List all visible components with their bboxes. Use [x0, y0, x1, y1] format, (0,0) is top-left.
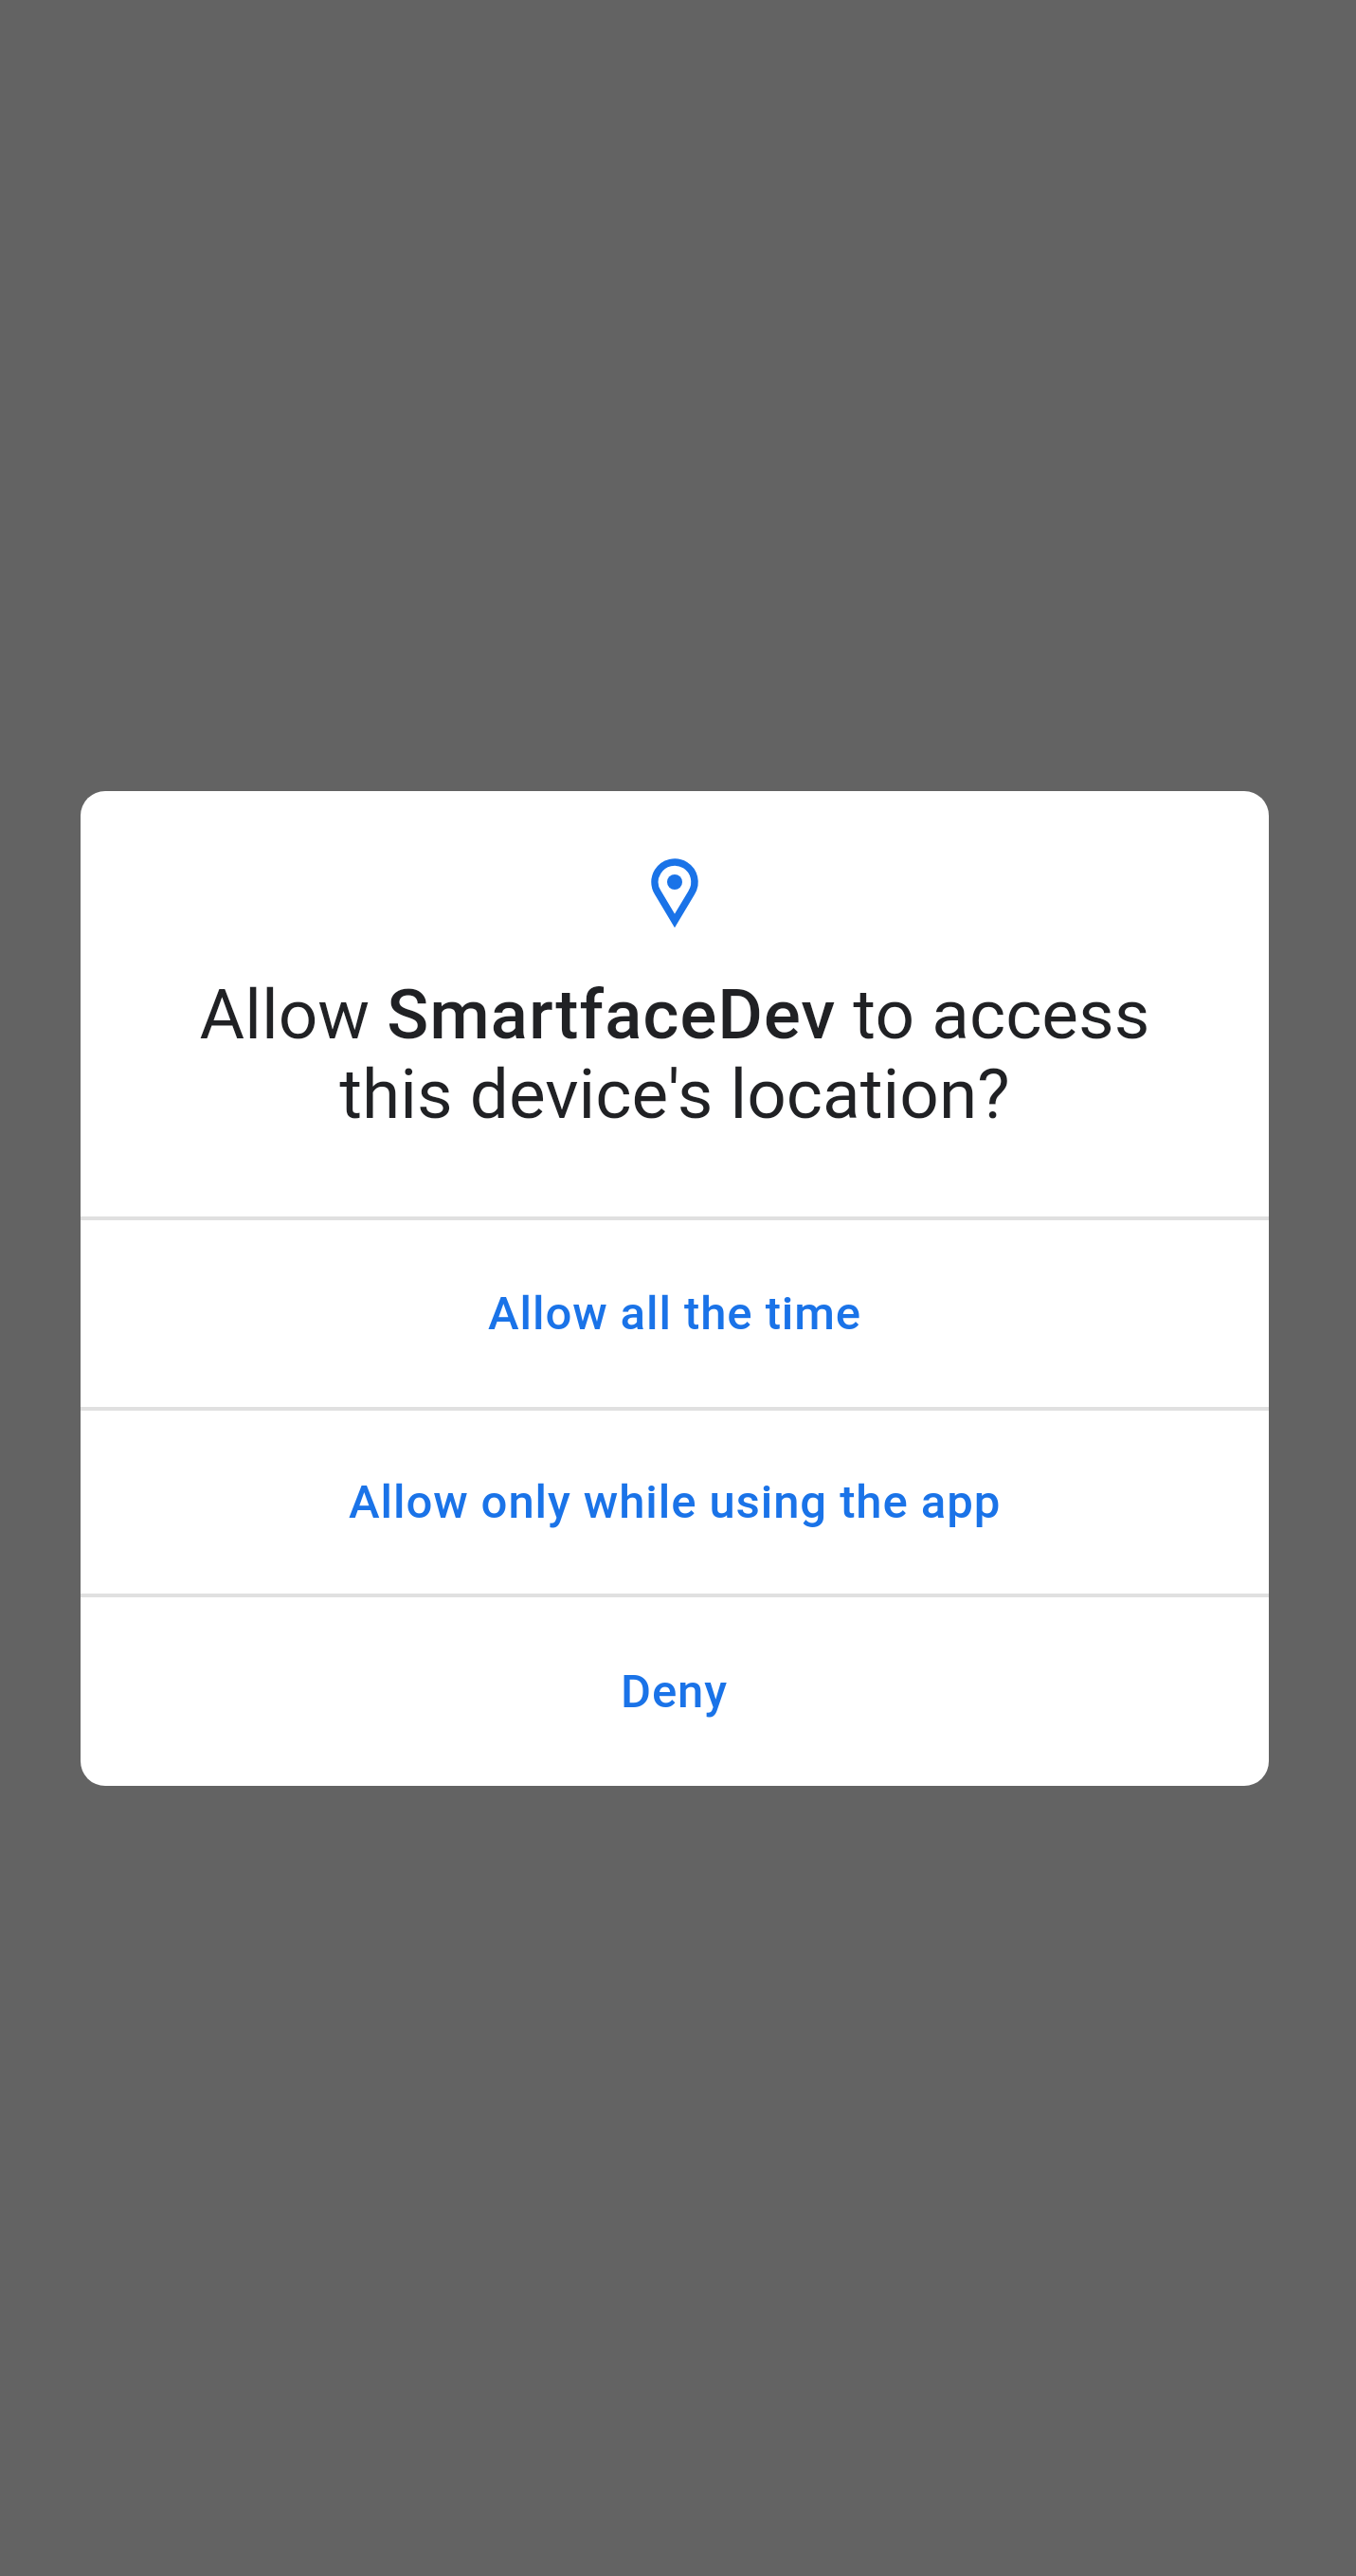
staticText: Allow only while using the app: [349, 1475, 1002, 1529]
button[interactable]: Deny: [81, 1597, 1269, 1785]
staticText: Deny: [621, 1665, 729, 1719]
button[interactable]: Allow all the time: [81, 1220, 1269, 1407]
staticText: Allow all the time: [488, 1287, 862, 1341]
button[interactable]: Allow only while using the app: [81, 1411, 1269, 1594]
staticText: Allow SmartfaceDev to access this device…: [166, 974, 1184, 1134]
